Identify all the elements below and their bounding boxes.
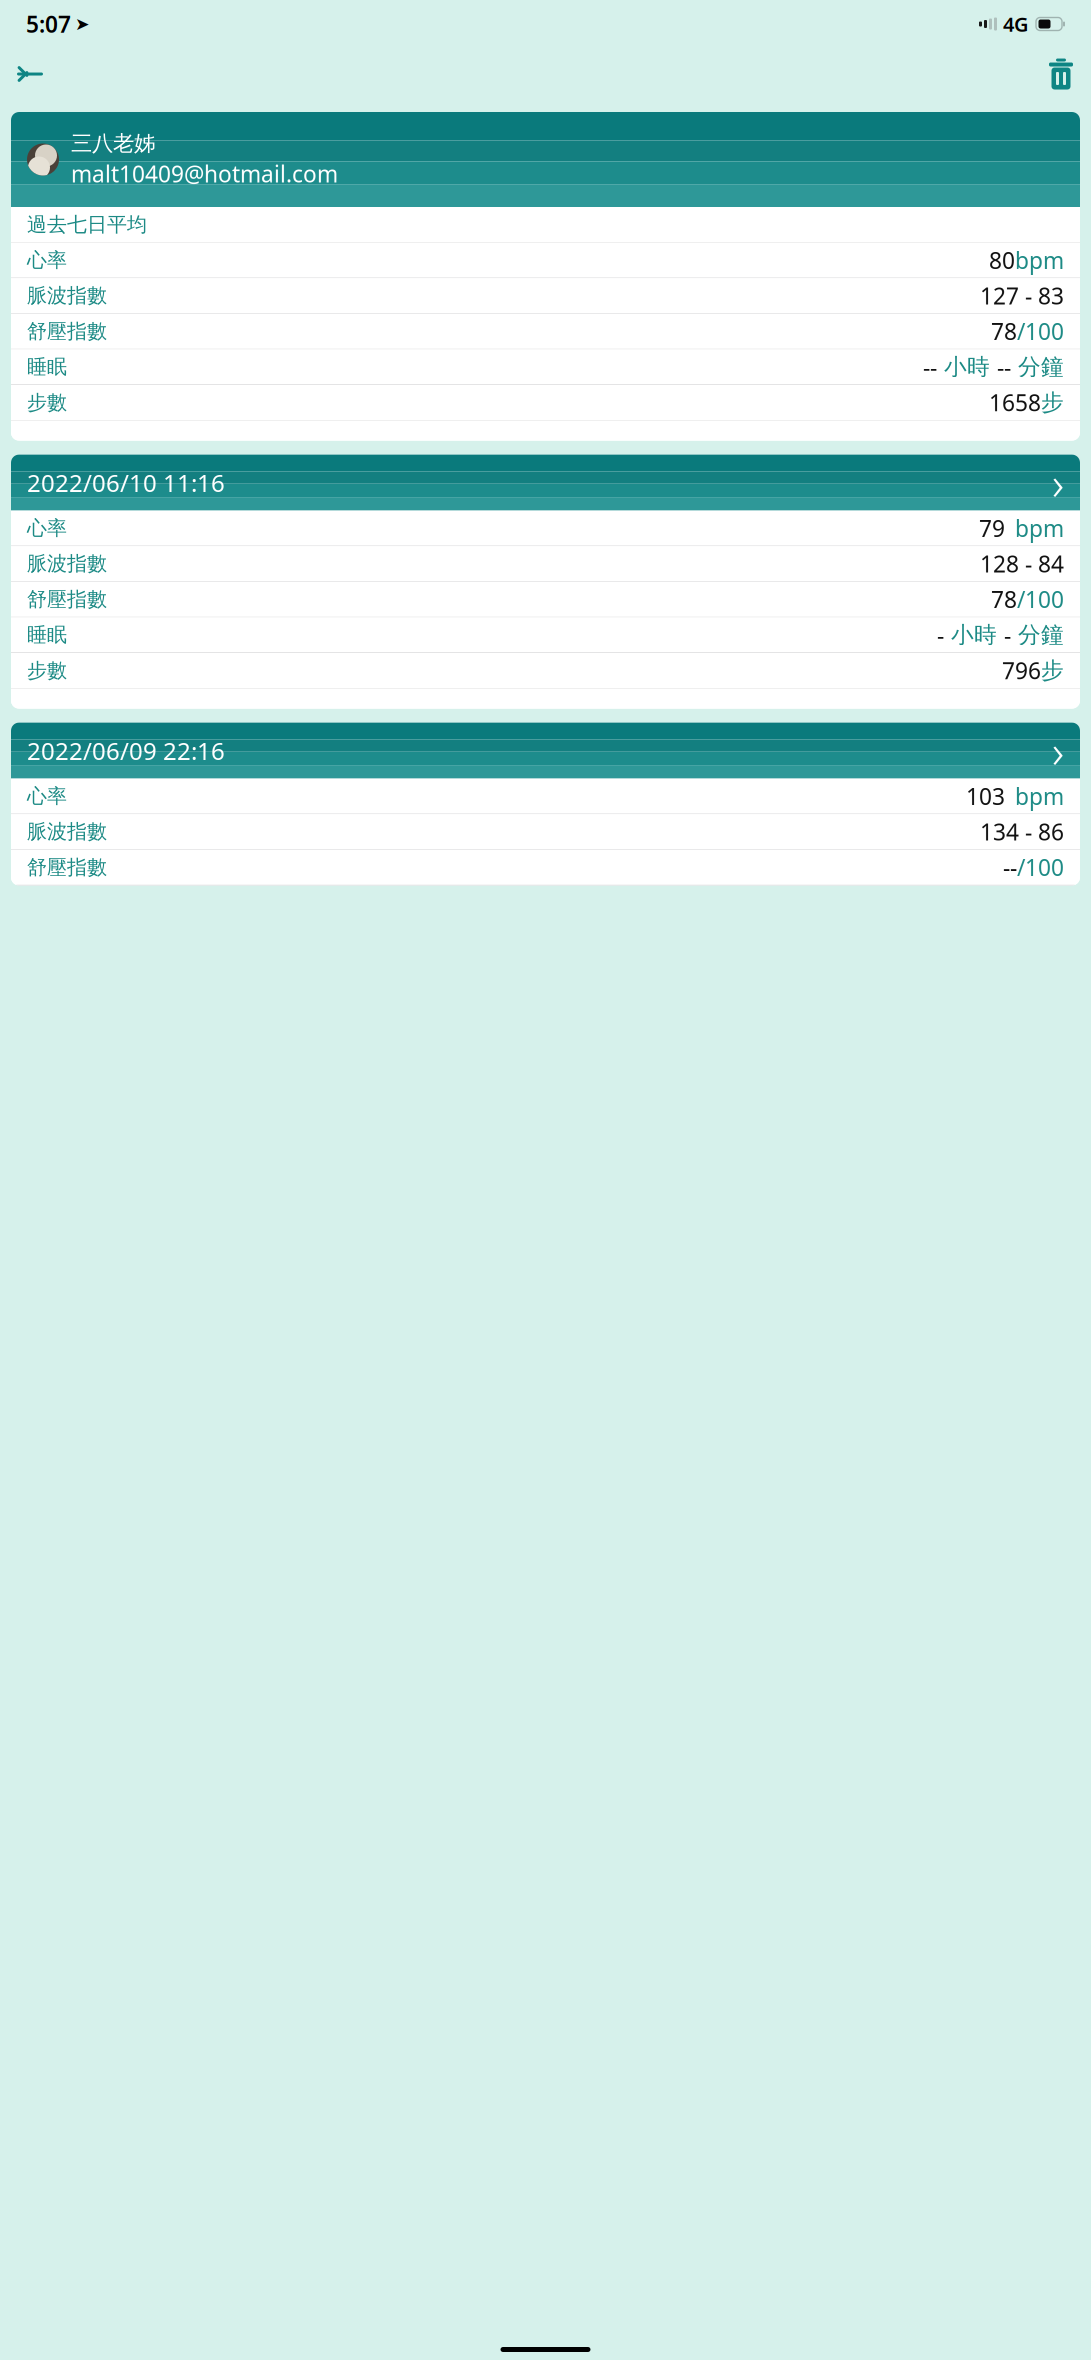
staticText: › [1052, 452, 1064, 513]
staticText: 2022/06/10 11:16 [27, 467, 225, 499]
staticText: -- [997, 352, 1011, 382]
staticText: 睡眠 [27, 623, 67, 647]
staticText: 舒壓指數 [27, 319, 107, 344]
staticText: 分鐘 [1011, 353, 1064, 381]
staticText: bpm [1015, 245, 1064, 275]
staticText: 舒壓指數 [27, 855, 107, 880]
staticText: ➤ [75, 14, 90, 34]
staticText: 78 [991, 316, 1017, 346]
staticText: 127 - 83 [980, 281, 1064, 311]
staticText: 步 [1041, 389, 1064, 416]
staticText: 80 [989, 245, 1015, 275]
staticText: 4G [1003, 11, 1029, 37]
staticText: 心率 [27, 248, 67, 272]
staticText: 舒壓指數 [27, 587, 107, 612]
staticText: 分鐘 [1011, 621, 1064, 649]
staticText: 三八老姊 [71, 130, 155, 156]
staticText: 79 [979, 513, 1005, 543]
button[interactable]: 2022/06/10 11:16 [11, 455, 1080, 511]
button[interactable]: Back [8, 52, 52, 96]
staticText: 脈波指數 [27, 283, 107, 308]
staticText: 796 [1002, 655, 1041, 685]
staticText: /100 [1017, 584, 1064, 614]
staticText: 2022/06/09 22:16 [27, 735, 225, 767]
staticText: 過去七日平均 [27, 212, 147, 237]
staticText: -- [923, 352, 937, 382]
button[interactable]: Delete [1039, 52, 1083, 96]
staticText: 步 [1041, 657, 1064, 684]
staticText: 步數 [27, 390, 67, 415]
staticText: 心率 [27, 784, 67, 808]
staticText: 心率 [27, 516, 67, 540]
staticText: - [937, 620, 944, 650]
staticText: 小時 [944, 621, 1004, 649]
staticText: 134 - 86 [980, 817, 1064, 847]
staticText: 睡眠 [27, 355, 67, 379]
staticText: 5:07 [26, 9, 71, 39]
staticText: 步數 [27, 658, 67, 683]
staticText: -- [1003, 852, 1017, 882]
staticText: /100 [1017, 316, 1064, 346]
staticText: 脈波指數 [27, 551, 107, 576]
staticText: /100 [1017, 852, 1064, 882]
button[interactable]: 2022/06/09 22:16 [11, 723, 1080, 779]
staticText: 1658 [989, 387, 1041, 417]
staticText: 小時 [937, 353, 997, 381]
staticText: bpm [1015, 513, 1064, 543]
staticText: malt10409@hotmail.com [71, 159, 338, 189]
staticText: 128 - 84 [980, 549, 1064, 579]
staticText: - [1004, 620, 1011, 650]
staticText: 脈波指數 [27, 819, 107, 844]
staticText: 103 [966, 781, 1005, 811]
staticText: 78 [991, 584, 1017, 614]
staticText: bpm [1015, 781, 1064, 811]
staticText: › [1052, 720, 1064, 781]
